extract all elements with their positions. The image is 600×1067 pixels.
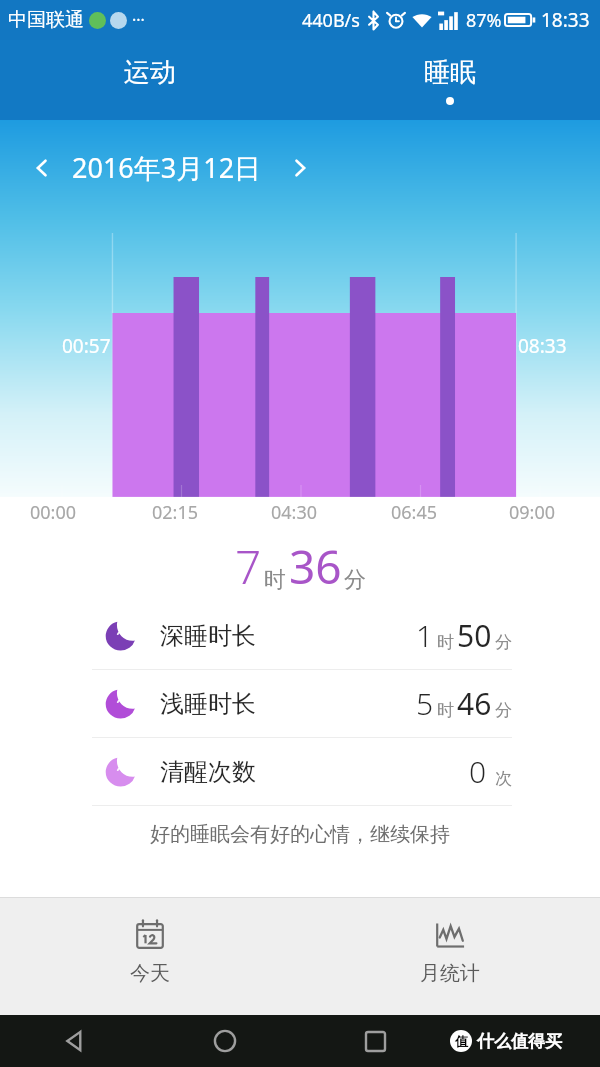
- button[interactable]: 深睡时长: [0, 602, 600, 669]
- staticText: 0: [469, 751, 487, 792]
- staticText: 7: [235, 535, 262, 598]
- staticText: 值: [455, 1033, 468, 1049]
- staticText: 5: [416, 683, 434, 724]
- staticText: 中国联通: [8, 8, 84, 32]
- staticText: 运动: [124, 56, 176, 89]
- button[interactable]: Previous day: [20, 146, 64, 190]
- staticText: 02:15: [152, 500, 199, 525]
- staticText: ···: [132, 9, 145, 31]
- staticText: 50: [457, 615, 492, 656]
- button[interactable]: 睡眠: [300, 40, 600, 120]
- staticText: 00:00: [30, 500, 77, 525]
- button[interactable]: Next day: [278, 146, 322, 190]
- staticText: 2016年3月12日: [72, 149, 262, 186]
- staticText: 18:33: [541, 7, 590, 33]
- staticText: 什么值得买: [477, 1031, 562, 1052]
- staticText: 深睡时长: [160, 621, 256, 651]
- staticText: 次: [495, 768, 512, 789]
- staticText: 06:45: [391, 500, 438, 525]
- staticText: 清醒次数: [160, 757, 256, 787]
- staticText: 87%: [466, 8, 502, 33]
- staticText: 月统计: [420, 961, 480, 986]
- button[interactable]: 今天: [0, 897, 300, 1015]
- staticText: 时: [264, 566, 286, 594]
- button[interactable]: 月统计: [300, 897, 600, 1015]
- staticText: 08:33: [518, 333, 567, 359]
- button[interactable]: 清醒次数: [0, 738, 600, 805]
- staticText: 00:57: [62, 333, 111, 359]
- button[interactable]: 运动: [0, 40, 300, 120]
- staticText: 时: [437, 632, 454, 653]
- button[interactable]: Home: [150, 1015, 300, 1067]
- staticText: 46: [457, 683, 492, 724]
- button[interactable]: Back: [0, 1015, 150, 1067]
- staticText: 04:30: [271, 500, 318, 525]
- staticText: 1: [416, 615, 434, 656]
- staticText: 时: [437, 700, 454, 721]
- button[interactable]: Recent apps: [300, 1015, 450, 1067]
- staticText: 今天: [130, 961, 170, 986]
- staticText: 09:00: [509, 500, 556, 525]
- staticText: 分: [495, 632, 512, 653]
- staticText: 440B/s: [302, 8, 360, 33]
- button[interactable]: 浅睡时长: [0, 670, 600, 737]
- staticText: 分: [495, 700, 512, 721]
- staticText: 睡眠: [424, 56, 476, 89]
- staticText: 36: [289, 535, 342, 598]
- staticText: 分: [344, 566, 366, 594]
- staticText: 好的睡眠会有好的心情，继续保持: [150, 822, 450, 847]
- staticText: 浅睡时长: [160, 689, 256, 719]
